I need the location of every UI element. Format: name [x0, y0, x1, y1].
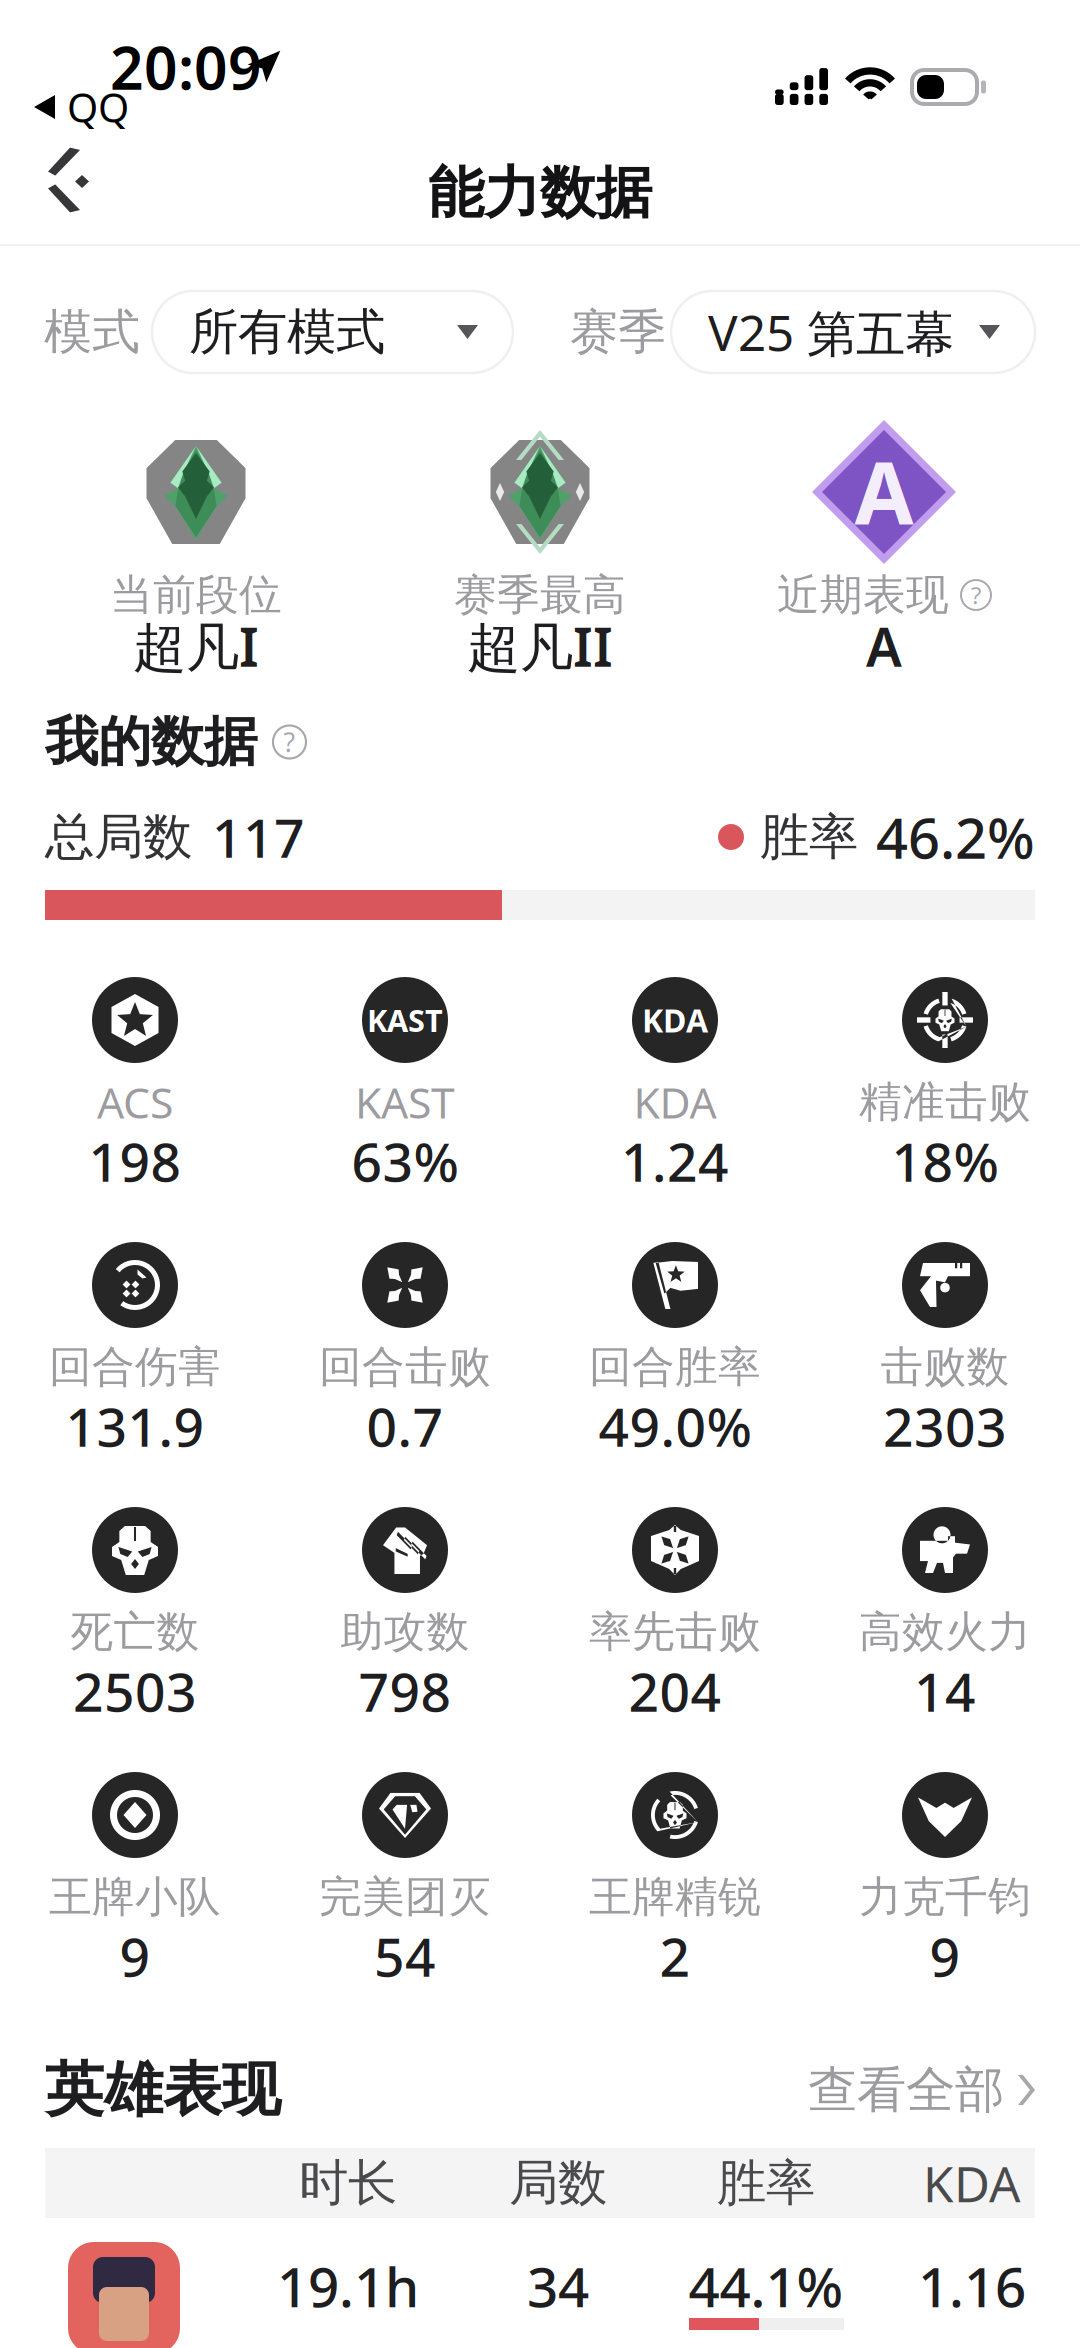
staticText: 英雄表现 — [45, 2054, 281, 2126]
staticText: ACS — [97, 1074, 173, 1130]
staticText: 时长 — [299, 2153, 397, 2213]
staticText: 率先击败 — [589, 1606, 761, 1658]
staticText: A — [866, 611, 902, 681]
staticText: 能力数据 — [428, 159, 652, 227]
staticText: 胜率 — [717, 2153, 815, 2213]
staticText: ? — [283, 724, 295, 760]
staticText: 44.1% — [688, 2250, 843, 2322]
staticText: 2303 — [883, 1391, 1007, 1461]
staticText: 局数 — [509, 2153, 607, 2213]
staticText: 9 — [929, 1921, 960, 1991]
staticText: 2503 — [73, 1656, 197, 1726]
staticText: 54 — [374, 1921, 436, 1991]
staticText: 赛季 — [570, 302, 666, 361]
staticText: 49.0% — [598, 1391, 751, 1461]
staticText: 助攻数 — [340, 1606, 469, 1658]
staticText: 击败数 — [880, 1341, 1009, 1393]
button[interactable]: Back — [0, 140, 132, 246]
staticText: 14 — [914, 1656, 976, 1726]
staticText: 20:09 — [110, 28, 262, 106]
staticText: 超凡II — [467, 611, 613, 681]
button[interactable]: 所有模式 — [152, 291, 513, 373]
staticText: A — [854, 435, 913, 549]
staticText: 我的数据 — [45, 709, 257, 775]
button[interactable]: V25 第五幕 — [671, 291, 1035, 373]
staticText: 精准击败 — [859, 1076, 1031, 1128]
staticText: 力克千钧 — [859, 1871, 1031, 1923]
staticText: 46.2% — [876, 800, 1035, 874]
staticText: 1.24 — [621, 1126, 729, 1196]
staticText: 798 — [358, 1656, 451, 1726]
staticText: 0.7 — [366, 1391, 443, 1461]
staticText: 查看全部 — [808, 2060, 1004, 2120]
staticText: 模式 — [44, 302, 140, 361]
staticText: 王牌小队 — [49, 1871, 221, 1923]
staticText: 9 — [119, 1921, 150, 1991]
staticText: 18% — [891, 1126, 998, 1196]
staticText: 王牌精锐 — [589, 1871, 761, 1923]
staticText: 131.9 — [65, 1391, 204, 1461]
staticText: ? — [971, 579, 981, 611]
staticText: 所有模式 — [189, 302, 385, 362]
staticText: 204 — [628, 1656, 721, 1726]
staticText: 回合击败 — [319, 1341, 491, 1393]
staticText: KDA — [633, 1074, 716, 1130]
staticText: KAST — [355, 1074, 455, 1130]
staticText: 近期表现 — [777, 569, 949, 621]
button[interactable]: 查看全部 — [775, 2062, 1035, 2118]
staticText: 死亡数 — [70, 1606, 199, 1658]
staticText: 198 — [88, 1126, 181, 1196]
staticText: 34 — [527, 2250, 589, 2322]
staticText: V25 第五幕 — [708, 299, 954, 365]
staticText: 超凡I — [133, 611, 259, 681]
staticText: 总局数 — [45, 807, 192, 867]
staticText: 回合伤害 — [49, 1341, 221, 1393]
staticText: KDA — [642, 999, 708, 1041]
staticText: QQ — [67, 80, 129, 133]
staticText: 赛季最高 — [454, 569, 626, 621]
staticText: KAST — [367, 1000, 443, 1040]
staticText: 2 — [659, 1921, 690, 1991]
staticText: KDA — [923, 2150, 1021, 2216]
staticText: 当前段位 — [110, 569, 282, 621]
staticText: 高效火力 — [859, 1606, 1031, 1658]
staticText: 1.16 — [918, 2250, 1026, 2322]
staticText: 19.1h — [277, 2250, 419, 2322]
staticText: 回合胜率 — [589, 1341, 761, 1393]
staticText: 117 — [212, 802, 305, 872]
staticText: 胜率 — [760, 807, 858, 867]
staticText: 63% — [351, 1126, 458, 1196]
staticText: 完美团灭 — [319, 1871, 491, 1923]
